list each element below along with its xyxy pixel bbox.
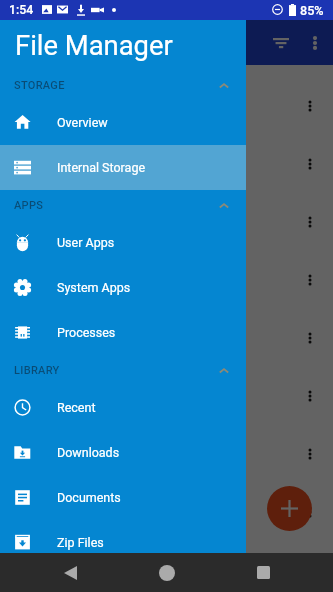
staticText: 85%	[300, 3, 324, 18]
staticText: Downloads	[57, 445, 120, 460]
button[interactable]: User Apps	[0, 220, 246, 265]
button[interactable]: This folder is empty	[0, 77, 333, 135]
button[interactable]: Music and files	[0, 309, 333, 367]
button[interactable]: Item options	[297, 209, 323, 235]
button[interactable]: Recycle bin file	[0, 367, 333, 425]
button[interactable]: Downloads	[0, 430, 246, 475]
staticText: LIBRARY	[14, 364, 60, 377]
button[interactable]: Archives and files	[0, 483, 333, 541]
staticText: Downloaded files	[16, 273, 112, 288]
staticText: Processes	[57, 325, 116, 340]
staticText: Zip Files	[57, 535, 104, 550]
staticText: Documents	[57, 490, 121, 505]
button[interactable]: Processes	[0, 310, 246, 355]
button[interactable]: Documents and files	[0, 135, 333, 193]
button[interactable]: Internal Storage	[0, 145, 246, 190]
staticText: User Apps	[57, 235, 115, 250]
button[interactable]: Documents	[0, 475, 246, 520]
staticText: STORAGE	[14, 79, 65, 92]
button[interactable]: Item options	[297, 499, 323, 525]
staticText: Recent	[57, 400, 96, 415]
staticText: Internal Storage	[57, 160, 146, 175]
staticText: Documents and files	[16, 157, 130, 172]
button[interactable]: Item options	[297, 93, 323, 119]
button[interactable]: Item options	[297, 441, 323, 467]
button[interactable]: LIBRARY	[0, 355, 246, 385]
button[interactable]: Item options	[297, 383, 323, 409]
staticText: Music and files	[16, 331, 100, 346]
button[interactable]: Back	[50, 553, 90, 592]
button[interactable]: STORAGE	[0, 70, 246, 100]
staticText: Cache is empty	[16, 447, 102, 462]
button[interactable]: Recent apps	[243, 553, 283, 592]
button[interactable]: Overview	[0, 100, 246, 145]
staticText: System Apps	[57, 280, 131, 295]
button[interactable]: Home	[147, 553, 187, 592]
staticText: Overview	[57, 115, 108, 130]
button[interactable]: Cache is empty	[0, 425, 333, 483]
staticText: Internal Storage	[60, 33, 175, 52]
button[interactable]: Add	[267, 486, 312, 531]
staticText: Recycle bin file	[16, 389, 99, 404]
button[interactable]: Item options	[297, 325, 323, 351]
button[interactable]: Downloaded files	[0, 251, 333, 309]
button[interactable]: Zip Files	[0, 520, 246, 565]
button[interactable]: Pictures and files	[0, 193, 333, 251]
button[interactable]: Item options	[297, 267, 323, 293]
button[interactable]: System Apps	[0, 265, 246, 310]
staticText: 1:54	[9, 3, 34, 17]
staticText: File Manager	[15, 30, 173, 62]
button[interactable]: APPS	[0, 190, 246, 220]
staticText: APPS	[14, 199, 44, 212]
button[interactable]: Recent	[0, 385, 246, 430]
button[interactable]: More options	[301, 28, 329, 57]
button[interactable]: Sort	[267, 28, 295, 57]
button[interactable]: Item options	[297, 151, 323, 177]
button[interactable]: Open navigation drawer	[16, 35, 33, 52]
